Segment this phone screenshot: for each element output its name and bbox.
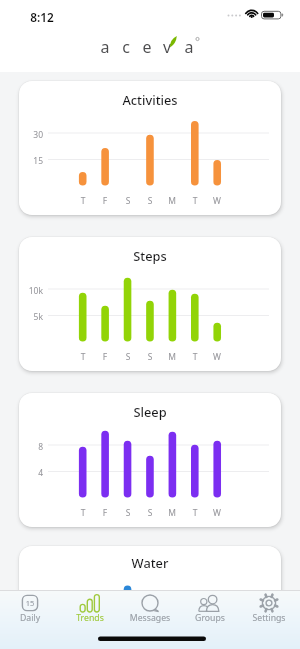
staticText: W [209,195,225,207]
button[interactable]: Water [19,546,281,649]
staticText: M [164,351,180,363]
staticText: Daily [3,612,57,624]
staticText: F [97,351,113,363]
button[interactable]: Trends [63,592,117,626]
button[interactable]: Groups [183,592,237,626]
button[interactable]: 15 [3,592,57,626]
staticText: W [209,507,225,519]
staticText: Sleep [19,403,281,420]
staticText: Activities [19,91,281,108]
staticText: 5k [23,311,43,323]
staticText: F [97,507,113,519]
staticText: 10k [23,285,43,297]
staticText: Trends [63,612,117,624]
staticText: 4 [23,467,43,479]
staticText: a [98,36,112,58]
staticText: T [187,195,203,207]
staticText: a [182,36,196,58]
staticText: Groups [183,612,237,624]
button[interactable]: Activities [19,81,281,215]
staticText: 15 [22,598,38,608]
staticText: Steps [19,247,281,264]
staticText: T [187,507,203,519]
staticText: Messages [123,612,177,624]
staticText: S [142,507,158,519]
staticText: S [142,195,158,207]
staticText: 15 [23,155,43,167]
staticText: W [209,351,225,363]
staticText: T [187,351,203,363]
button[interactable]: Messages [123,592,177,626]
staticText: 8:12 [22,9,62,25]
staticText: S [120,507,136,519]
staticText: Water [19,554,281,571]
staticText: c [119,36,133,58]
staticText: v [160,36,174,58]
staticText: 30 [23,129,43,141]
staticText: S [142,351,158,363]
button[interactable]: Sleep [19,393,281,527]
staticText: 8 [23,441,43,453]
staticText: T [75,351,91,363]
staticText: e [140,36,154,58]
staticText: Settings [242,612,296,624]
staticText: S [120,351,136,363]
staticText: F [97,195,113,207]
staticText: M [164,195,180,207]
staticText: T [75,195,91,207]
button[interactable]: Steps [19,237,281,371]
staticText: S [120,195,136,207]
staticText: M [164,507,180,519]
staticText: T [75,507,91,519]
button[interactable]: Settings [242,592,296,626]
